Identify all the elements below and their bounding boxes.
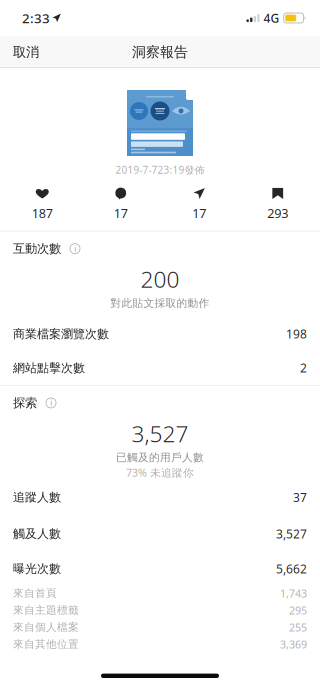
staticText: 對此貼文採取的動作 [110,296,209,310]
staticText: 來自主題標籤 [13,604,79,617]
button[interactable]: 商業檔案瀏覽次數 [0,316,320,352]
button[interactable]: 追蹤人數 [0,480,320,515]
staticText: 探索 [13,395,37,411]
staticText: 295 [289,603,307,617]
button[interactable]: 分享 [160,189,238,221]
staticText: 3,369 [280,637,307,651]
staticText: 2:33 [22,9,50,27]
staticText: i [74,242,76,255]
button[interactable]: 探索 說明 [43,395,59,411]
button[interactable]: 來自個人檔案 [0,619,320,636]
staticText: 37 [293,489,307,505]
button[interactable]: 曝光次數 [0,553,320,585]
staticText: 200 [140,264,179,294]
staticText: 2019-7-723:19發佈 [115,163,204,177]
staticText: 曝光次數 [13,561,61,576]
staticText: 5,662 [276,561,307,577]
staticText: 取消 [13,44,39,60]
staticText: 洞察報告 [132,43,188,61]
staticText: 2 [300,360,307,376]
staticText: 來自個人檔案 [13,621,79,634]
staticText: 293 [267,204,288,222]
staticText: 73% 未追蹤你 [126,465,194,480]
staticText: 來自首頁 [13,587,57,600]
staticText: 網站點擊次數 [13,360,85,375]
staticText: 觸及人數 [13,526,61,541]
staticText: i [50,396,52,409]
staticText: 17 [114,204,128,222]
staticText: 追蹤人數 [13,490,61,505]
button[interactable]: 網站點擊次數 [0,352,320,384]
button[interactable]: 儲存 [238,189,317,221]
staticText: 3,527 [131,418,188,449]
button[interactable]: 讚 [3,189,81,221]
button[interactable]: 來自首頁 [0,585,320,602]
button[interactable]: 互動次數 說明 [67,241,83,257]
button[interactable]: 來自主題標籤 [0,602,320,619]
button[interactable]: 取消 [0,36,49,68]
staticText: 17 [192,204,206,222]
button[interactable]: 來自其他位置 [0,636,320,653]
staticText: 3,527 [276,526,307,542]
staticText: 1,743 [280,586,307,600]
staticText: 198 [286,326,307,342]
staticText: 商業檔案瀏覽次數 [13,326,109,341]
button[interactable]: 觸及人數 [0,515,320,553]
staticText: 255 [289,620,307,634]
staticText: 來自其他位置 [13,638,79,651]
staticText: 187 [32,204,53,222]
staticText: 互動次數 [13,241,61,256]
staticText: 已觸及的用戶人數 [116,451,204,464]
staticText: 4G [264,10,280,26]
button[interactable]: 留言 [81,189,160,221]
